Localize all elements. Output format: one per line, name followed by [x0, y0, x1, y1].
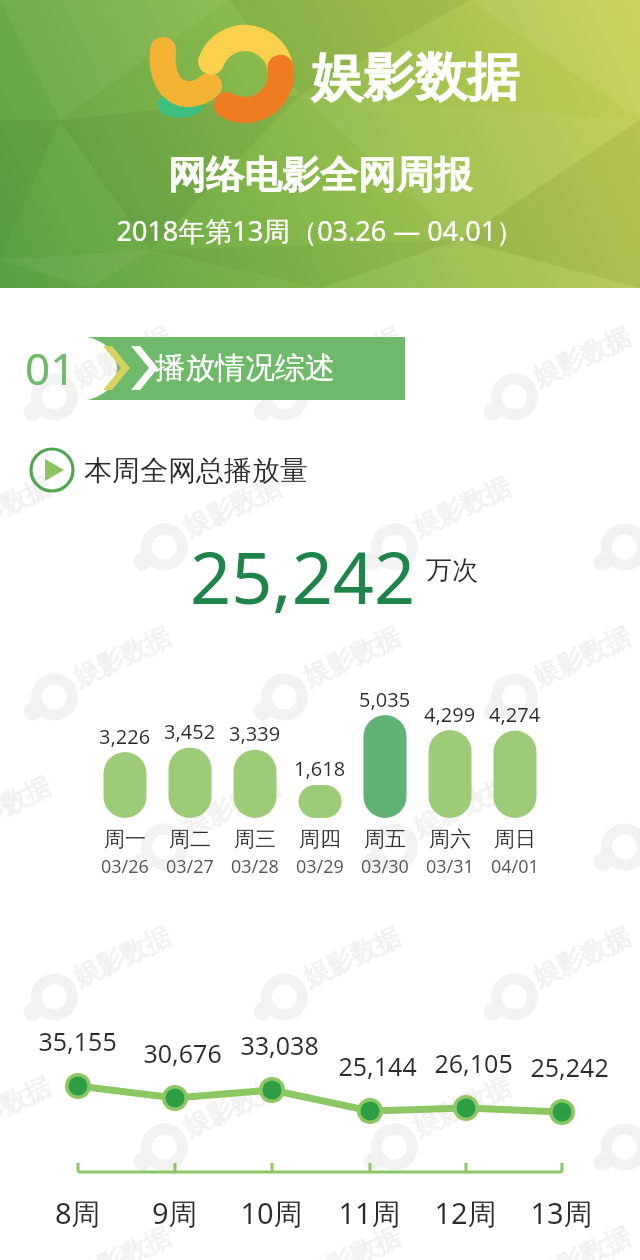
button[interactable]: 网络电影全网周报 — [0, 0, 640, 1260]
